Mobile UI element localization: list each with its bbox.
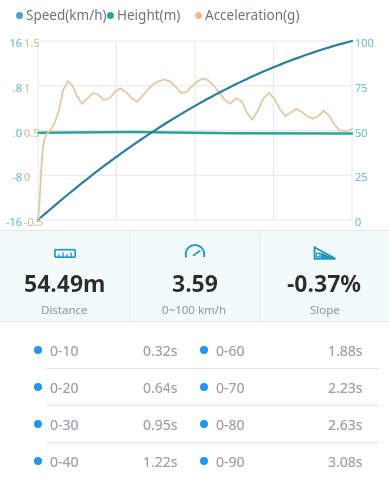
staticText: 50 bbox=[355, 125, 368, 137]
staticText: 0-70 bbox=[216, 378, 245, 397]
button[interactable]: 0-30 bbox=[0, 406, 389, 442]
staticText: 0.32s bbox=[143, 341, 178, 360]
staticText: 0-80 bbox=[216, 415, 245, 434]
staticText: Speed(km/h) bbox=[26, 6, 107, 24]
staticText: 1.5 bbox=[24, 35, 40, 47]
staticText: 0~100 km/h bbox=[162, 302, 227, 318]
staticText: 75 bbox=[355, 80, 368, 92]
staticText: Height(m) bbox=[117, 6, 181, 24]
staticText: -8 bbox=[12, 169, 22, 181]
staticText: Distance bbox=[41, 302, 88, 318]
staticText: 16 bbox=[9, 35, 22, 47]
staticText: 0.5 bbox=[24, 125, 40, 137]
other: 0~100 km/h bbox=[176, 242, 214, 264]
staticText: 3.59 bbox=[172, 267, 218, 298]
staticText: 0-20 bbox=[50, 378, 79, 397]
staticText: -16 bbox=[5, 214, 22, 226]
staticText: 0-40 bbox=[50, 452, 79, 471]
button[interactable]: Distance bbox=[0, 231, 129, 321]
staticText: Slope bbox=[310, 302, 340, 318]
button[interactable]: 0-10 bbox=[0, 332, 389, 368]
staticText: 0-30 bbox=[50, 415, 79, 434]
staticText: 1.88s bbox=[328, 341, 363, 360]
staticText: 2.23s bbox=[328, 378, 363, 397]
staticText: -0.5 bbox=[24, 214, 44, 226]
staticText: 54.49m bbox=[24, 267, 106, 298]
other: Slope bbox=[306, 242, 344, 264]
staticText: 0.64s bbox=[143, 378, 178, 397]
staticText: .8 bbox=[12, 80, 22, 92]
staticText: 100 bbox=[355, 35, 374, 47]
button[interactable]: 0-20 bbox=[0, 369, 389, 405]
staticText: 1.22s bbox=[143, 452, 178, 471]
button[interactable]: 0-40 bbox=[0, 443, 389, 479]
staticText: 1 bbox=[24, 80, 31, 92]
staticText: -0.37% bbox=[287, 267, 362, 298]
button[interactable]: Slope bbox=[260, 231, 389, 321]
staticText: 0-90 bbox=[216, 452, 245, 471]
other: Distance bbox=[46, 242, 84, 264]
staticText: .0 bbox=[12, 125, 22, 137]
staticText: 0.95s bbox=[143, 415, 178, 434]
staticText: 0-10 bbox=[50, 341, 79, 360]
button[interactable]: 0~100 km/h bbox=[130, 231, 259, 321]
staticText: 0-60 bbox=[216, 341, 245, 360]
staticText: 2.63s bbox=[328, 415, 363, 434]
staticText: 25 bbox=[355, 169, 368, 181]
staticText: Acceleration(g) bbox=[205, 6, 300, 24]
staticText: 3.08s bbox=[328, 452, 363, 471]
staticText: 0 bbox=[355, 214, 362, 226]
staticText: 0 bbox=[24, 169, 31, 181]
